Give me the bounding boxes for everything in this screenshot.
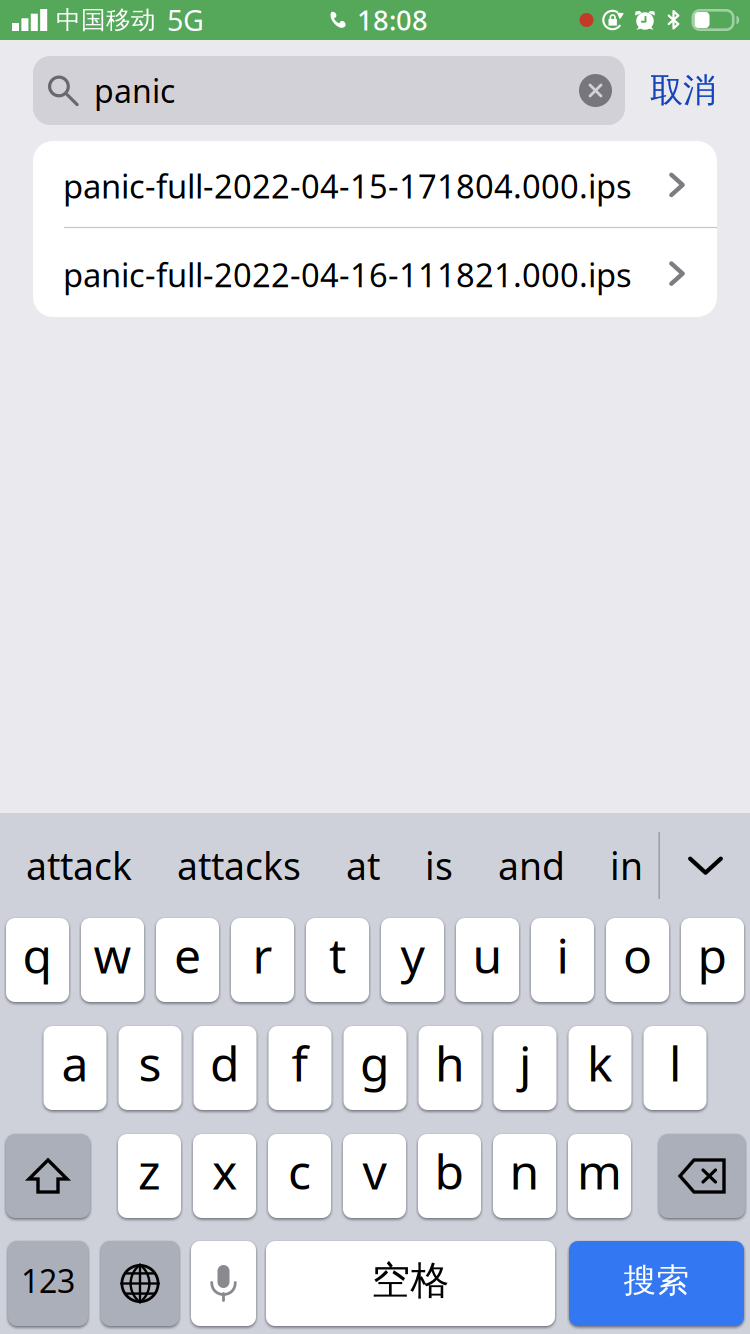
staticText: p [697,922,727,988]
button[interactable]: in [610,840,643,891]
staticText: n [509,1138,539,1204]
staticText: 5G [167,0,204,39]
staticText: f [291,1030,308,1096]
button[interactable]: x [193,1134,256,1218]
staticText: h [435,1030,465,1096]
staticText: panic-full-2022-04-16-111821.000.ips [63,252,632,297]
button[interactable]: panic-full-2022-04-15-171804.000.ips [33,141,717,227]
staticText: s [138,1030,161,1096]
button[interactable]: n [493,1134,556,1218]
button[interactable]: v [343,1134,406,1218]
button[interactable]: s [118,1026,181,1110]
button[interactable]: h [418,1026,481,1110]
button[interactable]: is [425,840,453,891]
button[interactable]: t [306,918,369,1002]
button[interactable]: panic-full-2022-04-16-111821.000.ips [33,228,717,317]
button[interactable]: a [43,1026,106,1110]
button[interactable]: f [268,1026,331,1110]
staticText: z [138,1138,161,1204]
staticText: attack [26,840,132,891]
staticText: is [425,840,453,891]
button[interactable]: y [381,918,444,1002]
button[interactable]: k [568,1026,631,1110]
staticText: l [669,1030,681,1096]
button[interactable]: d [193,1026,256,1110]
staticText: y [400,922,424,988]
staticText: o [623,922,652,988]
staticText: 搜索 [623,1260,689,1301]
button[interactable]: Dictation [191,1241,256,1326]
staticText: d [210,1030,240,1096]
button[interactable]: Shift [6,1134,90,1218]
button[interactable]: p [681,918,744,1002]
button[interactable]: b [418,1134,481,1218]
staticText: a [61,1030,88,1096]
staticText: 中国移动 [56,4,156,36]
button[interactable]: Next keyboard [101,1241,179,1326]
button[interactable]: 搜索 [569,1241,744,1326]
staticText: t [329,922,346,988]
button[interactable]: attacks [177,840,301,891]
staticText: c [288,1138,311,1204]
button[interactable]: 123 [8,1241,88,1326]
staticText: u [472,922,502,988]
staticText: v [362,1138,386,1204]
staticText: panic-full-2022-04-15-171804.000.ips [63,164,632,208]
button[interactable]: z [118,1134,181,1218]
staticText: attacks [177,840,301,891]
staticText: 123 [21,1259,75,1302]
button[interactable]: i [531,918,594,1002]
button[interactable]: 空格 [266,1241,555,1326]
staticText: 取消 [650,69,716,111]
staticText: g [360,1030,390,1096]
staticText: 空格 [371,1256,449,1305]
button[interactable]: u [456,918,519,1002]
button[interactable]: Hide keyboard [660,813,750,918]
staticText: at [346,840,380,891]
button[interactable]: r [231,918,294,1002]
staticText: and [498,840,565,891]
button[interactable]: attack [26,840,132,891]
button[interactable]: e [156,918,219,1002]
button[interactable]: Delete [659,1134,745,1218]
staticText: panic [94,69,175,112]
button[interactable]: o [606,918,669,1002]
staticText: x [212,1138,237,1204]
staticText: m [577,1138,622,1204]
button[interactable]: Clear search text [579,74,625,107]
button[interactable]: g [343,1026,406,1110]
button[interactable]: q [6,918,69,1002]
staticText: in [610,840,643,891]
button[interactable]: l [643,1026,706,1110]
staticText: b [434,1138,464,1204]
button[interactable]: m [568,1134,631,1218]
staticText: j [519,1030,531,1096]
staticText: e [174,922,201,988]
staticText: w [93,922,131,988]
button[interactable]: 取消 [650,69,716,111]
button[interactable]: w [81,918,144,1002]
button[interactable]: c [268,1134,331,1218]
staticText: k [587,1030,613,1096]
button[interactable]: j [493,1026,556,1110]
button[interactable]: and [498,840,565,891]
staticText: q [22,922,52,988]
staticText: 18:08 [357,1,428,39]
staticText: i [556,922,568,988]
button[interactable]: at [346,840,380,891]
staticText: r [252,922,272,988]
